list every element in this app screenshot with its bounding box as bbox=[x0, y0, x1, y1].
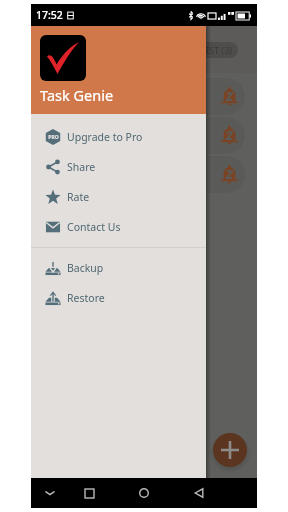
button[interactable]: Contact Us bbox=[31, 212, 206, 242]
button[interactable]: Backup bbox=[31, 253, 206, 283]
button[interactable] bbox=[33, 156, 245, 193]
button[interactable] bbox=[33, 117, 245, 154]
staticText: Rate bbox=[67, 190, 90, 204]
staticText: Share bbox=[67, 160, 96, 174]
button[interactable]: LIST (3) bbox=[149, 42, 238, 58]
staticText: PRO bbox=[48, 134, 59, 141]
staticText: Backup bbox=[67, 261, 104, 275]
staticText: Task Genie bbox=[40, 85, 114, 105]
button[interactable]: Add task bbox=[213, 433, 247, 467]
staticText: Contact Us bbox=[67, 220, 121, 234]
staticText: Restore bbox=[67, 291, 105, 305]
button[interactable] bbox=[33, 78, 245, 115]
button[interactable]: Back bbox=[188, 482, 210, 504]
staticText: 17:52 bbox=[36, 8, 63, 22]
button[interactable]: Home bbox=[133, 482, 155, 504]
button[interactable]: Share bbox=[31, 152, 206, 182]
button[interactable]: PRO bbox=[31, 122, 206, 152]
staticText: LIST (3) bbox=[201, 44, 233, 56]
button[interactable]: Hide keyboard bbox=[39, 482, 61, 504]
button[interactable]: Recents bbox=[78, 482, 100, 504]
button[interactable]: Restore bbox=[31, 283, 206, 313]
button[interactable]: Rate bbox=[31, 182, 206, 212]
staticText: Upgrade to Pro bbox=[67, 130, 143, 144]
